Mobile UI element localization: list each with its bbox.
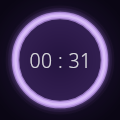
staticText: 00 : 31 xyxy=(29,47,92,74)
button[interactable]: Timer 00:31, tap to pause xyxy=(0,0,120,120)
